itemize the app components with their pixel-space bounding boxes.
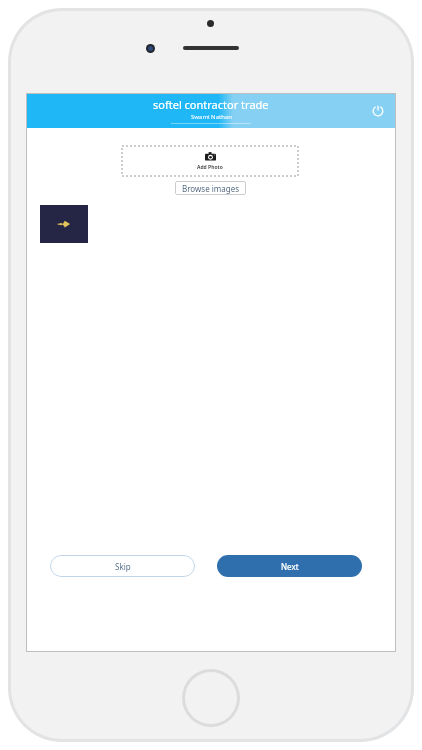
button[interactable]	[40, 205, 88, 243]
staticText: Add Photo	[197, 164, 223, 171]
button[interactable]: Browse images	[175, 181, 246, 195]
button[interactable]: Power / Logout	[368, 101, 388, 121]
button[interactable]: Add Photo	[122, 146, 298, 176]
button[interactable]: Skip	[50, 555, 195, 577]
staticText: Skip	[115, 561, 131, 572]
staticText: Browse images	[182, 183, 240, 194]
staticText: Next	[281, 561, 299, 572]
staticText: Swami Nathan	[191, 113, 232, 121]
button[interactable]: Next	[217, 555, 362, 577]
staticText: softel contractor trade	[153, 97, 269, 112]
